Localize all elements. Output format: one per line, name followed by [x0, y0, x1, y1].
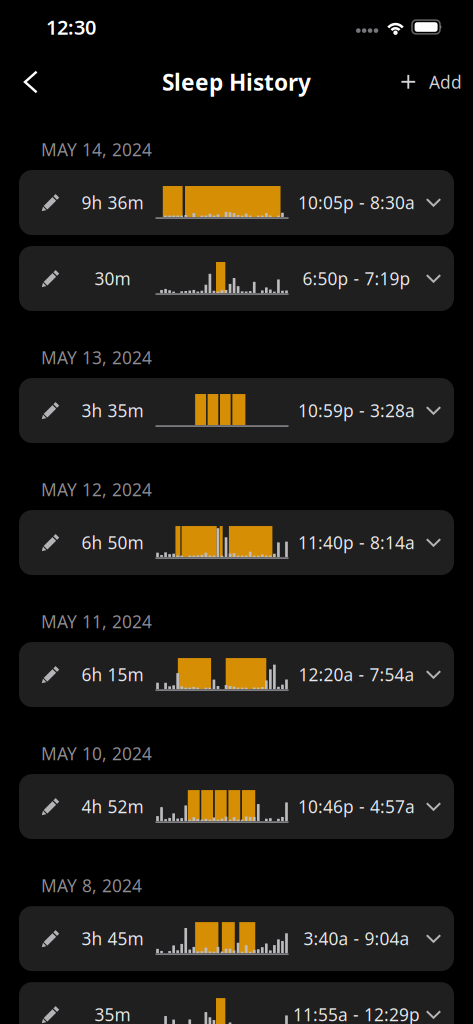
staticText: 3:40a - 9:04a [303, 927, 409, 950]
staticText: 3h 35m [81, 399, 143, 422]
staticText: 11:55a - 12:29p [293, 1003, 420, 1024]
staticText: 9h 36m [81, 191, 143, 214]
staticText: Sleep History [162, 67, 311, 97]
staticText: MAY 10, 2024 [41, 742, 152, 765]
staticText: 35m [94, 1003, 130, 1024]
button[interactable]: 30m [19, 246, 454, 311]
button[interactable]: 6h 15m [19, 642, 454, 707]
button[interactable]: 3h 45m [19, 906, 454, 971]
staticText: 6h 15m [81, 663, 143, 686]
staticText: 10:59p - 3:28a [298, 399, 415, 422]
staticText: MAY 11, 2024 [41, 610, 152, 633]
button[interactable]: 3h 35m [19, 378, 454, 443]
staticText: 10:46p - 4:57a [298, 795, 415, 818]
staticText: 3h 45m [81, 927, 143, 950]
staticText: 12:20a - 7:54a [298, 663, 414, 686]
staticText: MAY 14, 2024 [41, 138, 152, 161]
staticText: 6:50p - 7:19p [302, 267, 410, 290]
staticText: Add [429, 70, 462, 93]
button[interactable]: 9h 36m [19, 170, 454, 235]
staticText: 6h 50m [81, 531, 143, 554]
staticText: MAY 12, 2024 [41, 478, 152, 501]
staticText: 10:05p - 8:30a [298, 191, 415, 214]
staticText: MAY 13, 2024 [41, 346, 152, 369]
button[interactable]: 4h 52m [19, 774, 454, 839]
staticText: 11:40p - 8:14a [298, 531, 415, 554]
staticText: 12:30 [46, 14, 96, 40]
button[interactable]: Back [0, 58, 48, 105]
staticText: 30m [94, 267, 130, 290]
staticText: 4h 52m [81, 795, 143, 818]
button[interactable]: 35m [19, 982, 454, 1024]
staticText: MAY 8, 2024 [41, 874, 142, 897]
button[interactable]: Add [391, 58, 473, 105]
button[interactable]: 6h 50m [19, 510, 454, 575]
